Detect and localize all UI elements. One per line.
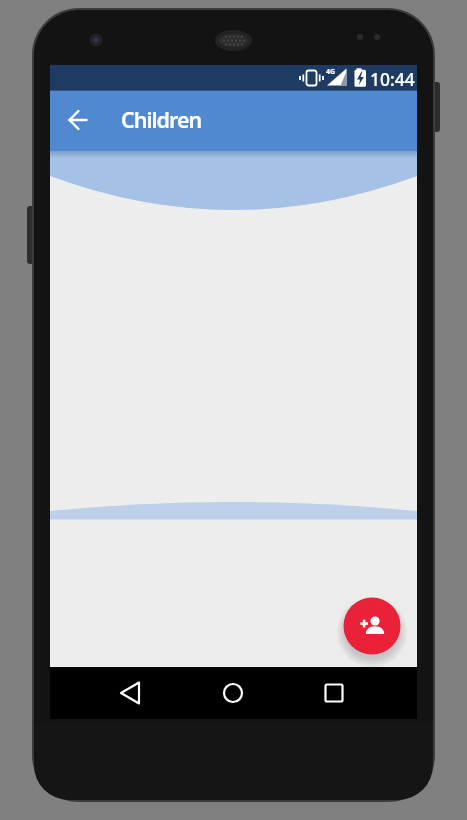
button[interactable] bbox=[343, 597, 401, 655]
staticText: 4G bbox=[326, 67, 336, 77]
staticText: 10:44 bbox=[370, 67, 415, 91]
button[interactable] bbox=[112, 676, 148, 712]
button[interactable] bbox=[215, 676, 251, 712]
button[interactable] bbox=[60, 104, 94, 138]
button[interactable] bbox=[316, 676, 352, 712]
staticText: Children bbox=[121, 105, 202, 134]
